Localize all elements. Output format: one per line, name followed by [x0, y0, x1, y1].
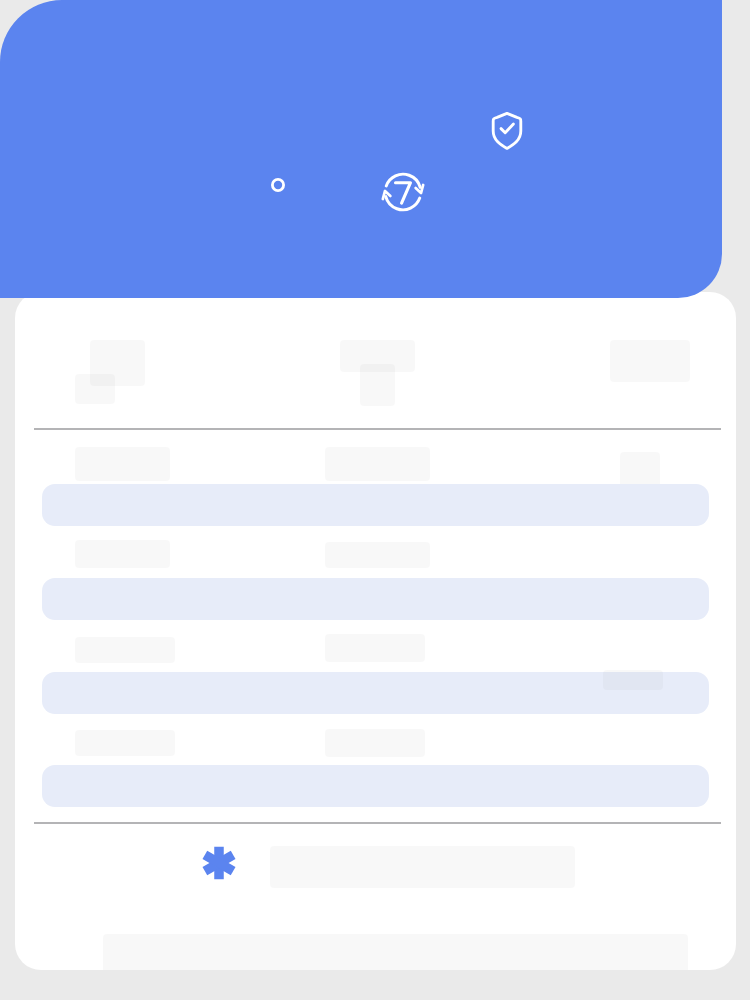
button[interactable]: 7 day return: [374, 163, 432, 221]
button[interactable]: Required field: [197, 841, 241, 885]
button[interactable]: Status: [265, 172, 291, 198]
button[interactable]: Secure: [481, 104, 533, 156]
